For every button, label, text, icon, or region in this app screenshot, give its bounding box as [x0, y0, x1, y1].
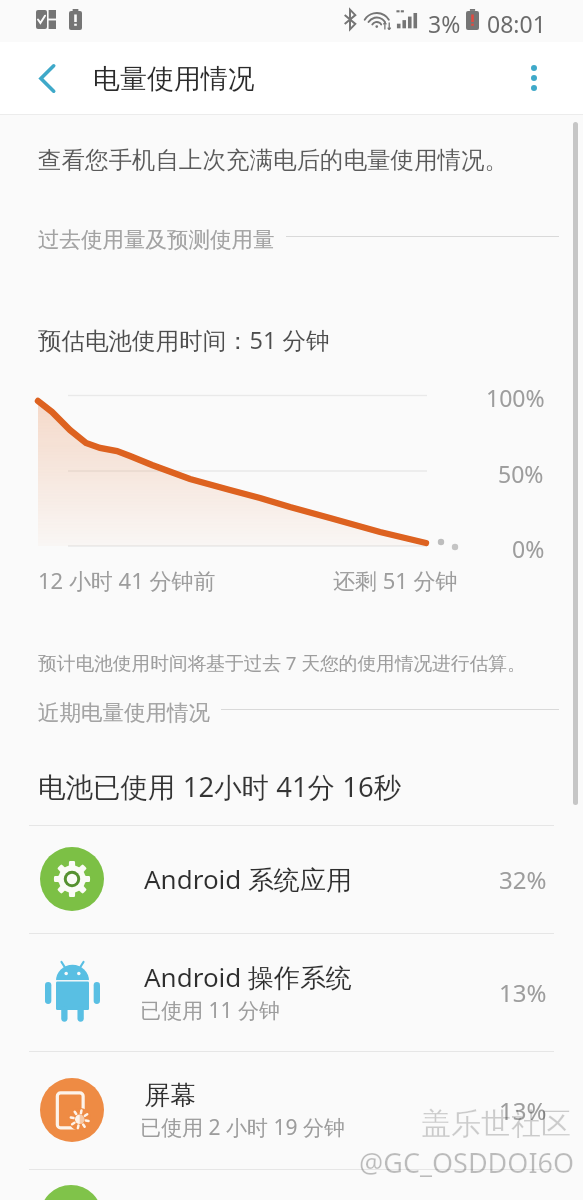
button[interactable]: Android 系统应用: [0, 825, 583, 933]
staticText: 13%: [499, 1094, 547, 1127]
staticText: 查看您手机自上次充满电后的电量使用情况。: [38, 145, 508, 175]
staticText: 已使用 2 小时 19 分钟: [140, 1113, 345, 1142]
button[interactable]: Back: [22, 53, 72, 103]
staticText: 近期电量使用情况: [38, 699, 210, 726]
staticText: 电量使用情况: [93, 62, 255, 96]
staticText: 08:01: [487, 8, 546, 39]
staticText: 32%: [499, 863, 547, 896]
button[interactable]: 屏幕: [0, 1051, 583, 1169]
staticText: 盖乐世社区: [421, 1105, 571, 1143]
staticText: 过去使用量及预测使用量: [38, 226, 275, 253]
staticText: Android 系统应用: [144, 861, 353, 897]
staticText: 预计电池使用时间将基于过去 7 天您的使用情况进行估算。: [38, 650, 526, 676]
staticText: 0%: [512, 533, 545, 564]
staticText: 预估电池使用时间：51 分钟: [38, 324, 330, 356]
staticText: 屏幕: [144, 1079, 196, 1112]
button[interactable]: Android 操作系统: [0, 933, 583, 1051]
staticText: 还剩 51 分钟: [333, 565, 458, 595]
staticText: 100%: [486, 382, 545, 413]
staticText: 电池已使用 12小时 41分 16秒: [38, 768, 402, 806]
button[interactable]: More options: [509, 53, 559, 103]
staticText: 已使用 11 分钟: [140, 996, 280, 1025]
staticText: Android 操作系统: [144, 959, 353, 995]
staticText: 13%: [499, 976, 547, 1009]
staticText: 12 小时 41 分钟前: [38, 565, 216, 595]
staticText: 3%: [428, 8, 461, 39]
staticText: 50%: [498, 458, 544, 489]
staticText: @GC_OSDDOI6O: [359, 1144, 575, 1181]
